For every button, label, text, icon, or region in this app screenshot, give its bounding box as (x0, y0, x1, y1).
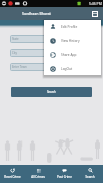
button[interactable]: Edit Profile (44, 20, 101, 34)
button[interactable]: Share App (44, 48, 101, 62)
staticText: Enter Town (12, 65, 27, 69)
staticText: LogOut (61, 67, 73, 71)
button[interactable]: Search (77, 165, 103, 183)
button[interactable]: All Crimes (25, 165, 51, 183)
staticText: State (12, 37, 19, 41)
button[interactable]: Enter Town (10, 63, 93, 71)
staticText: View History (61, 39, 80, 43)
staticText: 5:46 PM (89, 1, 102, 6)
staticText: Search (85, 175, 95, 179)
button[interactable]: State (10, 35, 93, 43)
button[interactable]: Search (11, 87, 92, 97)
button[interactable]: Overflow menu (91, 10, 99, 18)
button[interactable]: View History (44, 34, 101, 48)
staticText: Edit Profile (61, 25, 78, 29)
staticText: Share App (61, 53, 77, 57)
button[interactable]: City (10, 49, 93, 57)
staticText: Recet Crime (4, 175, 21, 179)
staticText: City (12, 51, 17, 55)
staticText: All Crimes (31, 175, 45, 179)
staticText: Post Crime (57, 175, 72, 179)
staticText: Search (47, 90, 56, 94)
staticText: Savdhaan Bharat (22, 11, 51, 16)
button[interactable]: Post Crime (51, 165, 77, 183)
button[interactable]: LogOut (44, 62, 101, 75)
button[interactable]: Recet Crime (0, 165, 25, 183)
